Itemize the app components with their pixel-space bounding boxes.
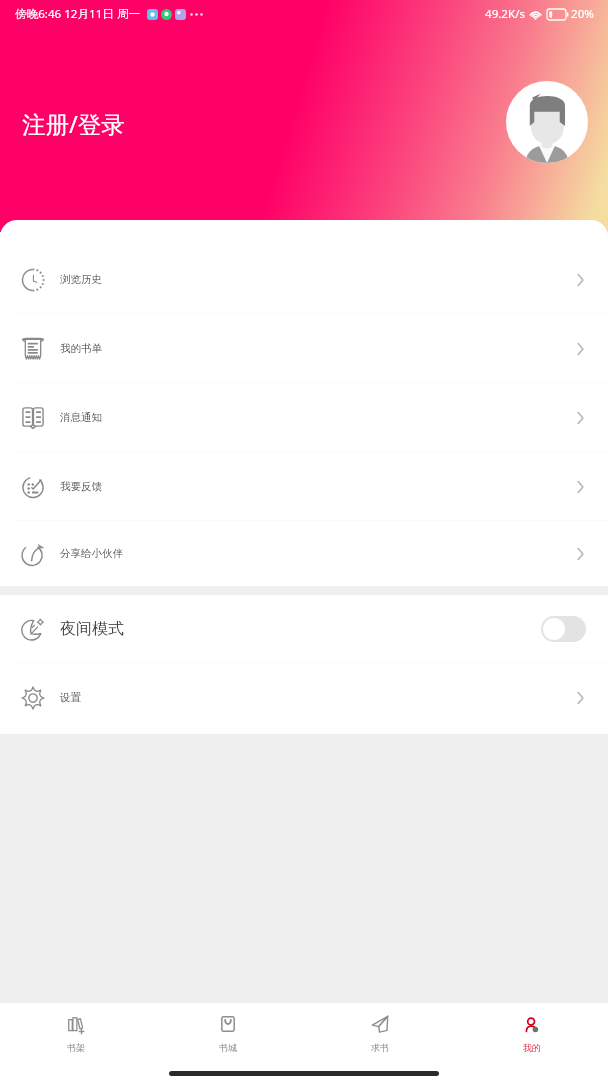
staticText: 求书 (371, 1042, 389, 1053)
staticText: 20% (571, 6, 594, 22)
button[interactable]: 求书 (304, 1003, 456, 1060)
staticText: 傍晚6:46 12月11日 周一 (15, 6, 141, 22)
button[interactable]: 浏览历史 (0, 245, 608, 314)
staticText: 消息通知 (60, 411, 102, 424)
staticText: 49.2K/s (485, 6, 526, 22)
staticText: 注册/登录 (22, 108, 125, 140)
button[interactable]: 夜间模式 (0, 595, 608, 663)
button[interactable]: 书城 (152, 1003, 304, 1060)
button[interactable]: Profile avatar (506, 81, 588, 163)
staticText: 浏览历史 (60, 273, 102, 286)
button[interactable]: 分享给小伙伴 (0, 521, 608, 586)
button[interactable]: 消息通知 (0, 383, 608, 452)
button[interactable]: Night mode toggle (541, 616, 586, 642)
staticText: 书架 (67, 1042, 85, 1053)
button[interactable]: 设置 (0, 663, 608, 732)
staticText: 分享给小伙伴 (60, 547, 123, 560)
staticText: 夜间模式 (60, 619, 124, 639)
button[interactable]: 我要反馈 (0, 452, 608, 521)
button[interactable]: 书架 (0, 1003, 152, 1060)
staticText: 我要反馈 (60, 480, 102, 493)
staticText: 设置 (60, 691, 81, 704)
staticText: 书城 (219, 1042, 237, 1053)
button[interactable]: 我的 (456, 1003, 608, 1060)
staticText: 我的 (523, 1042, 541, 1053)
staticText: 我的书单 (60, 342, 102, 355)
button[interactable]: 我的书单 (0, 314, 608, 383)
